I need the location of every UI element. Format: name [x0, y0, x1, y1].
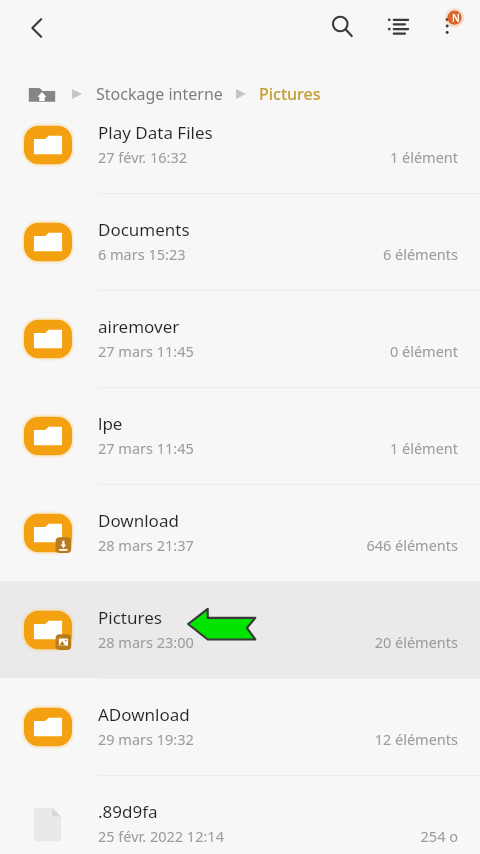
staticText: ADownload: [98, 703, 190, 726]
button[interactable]: airemover: [0, 290, 480, 387]
button[interactable]: More options: [426, 3, 472, 49]
button[interactable]: Search: [319, 3, 365, 49]
button[interactable]: Download: [0, 484, 480, 581]
staticText: 12 éléments: [374, 729, 458, 749]
button[interactable]: Home: [27, 79, 57, 109]
staticText: 646 éléments: [366, 535, 458, 555]
staticText: 25 févr. 2022 12:14: [98, 826, 224, 846]
staticText: Pictures: [259, 83, 321, 105]
button[interactable]: ADownload: [0, 678, 480, 775]
button[interactable]: Back: [14, 5, 60, 51]
button[interactable]: .89d9fa: [0, 775, 480, 854]
staticText: Pictures: [98, 606, 162, 629]
staticText: 0 élément: [389, 341, 458, 361]
staticText: 28 mars 23:00: [98, 632, 194, 652]
staticText: 6 éléments: [382, 244, 458, 264]
button[interactable]: Stockage interne: [96, 83, 223, 105]
staticText: Stockage interne: [96, 83, 223, 105]
staticText: 28 mars 21:37: [98, 535, 194, 555]
button[interactable]: lpe: [0, 387, 480, 484]
button[interactable]: Play Data Files: [0, 96, 480, 193]
button[interactable]: Sort: [376, 3, 422, 49]
staticText: Documents: [98, 218, 190, 241]
button[interactable]: Pictures: [259, 83, 321, 105]
staticText: 20 éléments: [374, 632, 458, 652]
staticText: 254 o: [420, 826, 458, 846]
staticText: 27 mars 11:45: [98, 341, 194, 361]
staticText: 27 févr. 16:32: [98, 147, 187, 167]
staticText: 27 mars 11:45: [98, 438, 194, 458]
staticText: airemover: [98, 315, 180, 338]
staticText: lpe: [98, 412, 123, 435]
staticText: 1 élément: [389, 438, 458, 458]
staticText: N: [452, 11, 460, 25]
staticText: 1 élément: [389, 147, 458, 167]
staticText: Download: [98, 509, 179, 532]
staticText: 29 mars 19:32: [98, 729, 194, 749]
button[interactable]: Documents: [0, 193, 480, 290]
staticText: Play Data Files: [98, 121, 213, 144]
staticText: .89d9fa: [98, 800, 158, 823]
button[interactable]: Pictures: [0, 581, 480, 678]
staticText: 6 mars 15:23: [98, 244, 186, 264]
